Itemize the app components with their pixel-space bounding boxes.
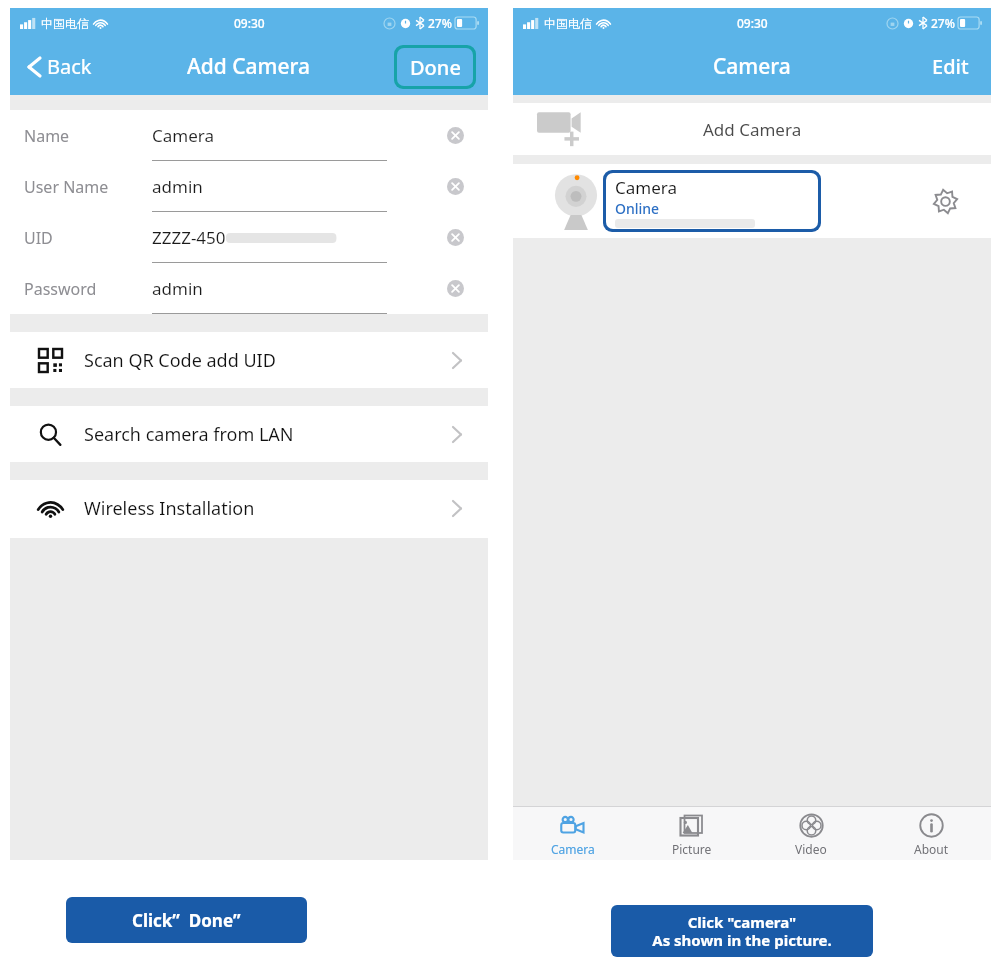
staticText: User Name (24, 176, 109, 198)
staticText: admin (152, 277, 203, 300)
staticText: Camera (713, 52, 791, 81)
button[interactable]: Back (24, 49, 96, 84)
staticText: Back (47, 53, 92, 80)
button[interactable]: Camera (513, 164, 991, 238)
staticText: Edit (932, 53, 969, 80)
staticText: Scan QR Code add UID (84, 348, 276, 373)
staticText: 27% (931, 15, 955, 31)
staticText: Camera (551, 841, 595, 857)
staticText: ZZZZ-450 (152, 226, 226, 249)
staticText: Click "camera" As shown in the picture. (652, 912, 832, 951)
staticText: 09:30 (234, 15, 265, 31)
staticText: Camera (152, 124, 214, 147)
button[interactable]: Picture (632, 807, 751, 860)
button[interactable]: Click” Done” (66, 897, 307, 943)
staticText: Video (795, 841, 827, 857)
staticText: 27% (428, 15, 452, 31)
staticText: Wireless Installation (84, 496, 255, 521)
staticText: Search camera from LAN (84, 422, 294, 447)
staticText: 09:30 (737, 15, 768, 31)
button[interactable]: Click "camera" As shown in the picture. (611, 905, 873, 957)
button[interactable]: Settings (932, 188, 959, 215)
button[interactable]: Add Camera (513, 103, 991, 155)
staticText: Password (24, 278, 97, 300)
staticText: Add Camera (703, 118, 802, 141)
button[interactable]: Name (10, 110, 488, 161)
button[interactable]: UID (10, 212, 488, 263)
staticText: 中国电信 (41, 16, 89, 31)
button[interactable]: Camera (606, 173, 818, 229)
staticText: UID (24, 227, 53, 249)
staticText: Add Camera (187, 52, 311, 81)
staticText: 中国电信 (544, 16, 592, 31)
button[interactable]: Password (10, 263, 488, 314)
button[interactable]: Scan QR Code add UID (10, 332, 488, 388)
button[interactable]: Search camera from LAN (10, 406, 488, 462)
button[interactable]: User Name (10, 161, 488, 212)
staticText: Picture (672, 841, 712, 857)
staticText: Done (410, 54, 461, 81)
button[interactable]: Camera (513, 807, 632, 860)
button[interactable]: About (871, 807, 991, 860)
staticText: Name (24, 125, 70, 147)
button[interactable]: Edit (928, 49, 973, 84)
staticText: Camera (615, 176, 677, 199)
button[interactable]: Done (397, 48, 473, 86)
staticText: About (914, 841, 949, 857)
staticText: Online (615, 199, 660, 218)
staticText: Click” Done” (132, 909, 241, 932)
button[interactable]: Wireless Installation (10, 480, 488, 536)
staticText: admin (152, 175, 203, 198)
button[interactable]: Video (751, 807, 871, 860)
